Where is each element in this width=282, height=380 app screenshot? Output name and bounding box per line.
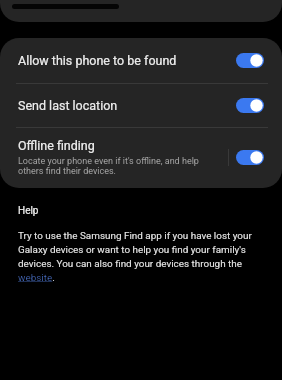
staticText: Allow this phone to be found [18, 53, 177, 68]
staticText: Send last location [18, 98, 118, 113]
staticText: Help [18, 205, 39, 217]
button[interactable]: Toggle, on [236, 98, 264, 113]
staticText: Try to use the Samsung Find app if you h… [18, 230, 266, 283]
staticText: Locate your phone even if it's offline, … [18, 156, 216, 176]
button[interactable]: Send last location [0, 84, 282, 127]
button[interactable]: Offline finding [0, 128, 282, 188]
button[interactable] [0, 0, 282, 22]
button[interactable]: Toggle, on [236, 53, 264, 68]
staticText: Offline finding [18, 138, 95, 153]
button[interactable]: Toggle, on [236, 150, 264, 165]
button[interactable]: Allow this phone to be found [0, 38, 282, 83]
